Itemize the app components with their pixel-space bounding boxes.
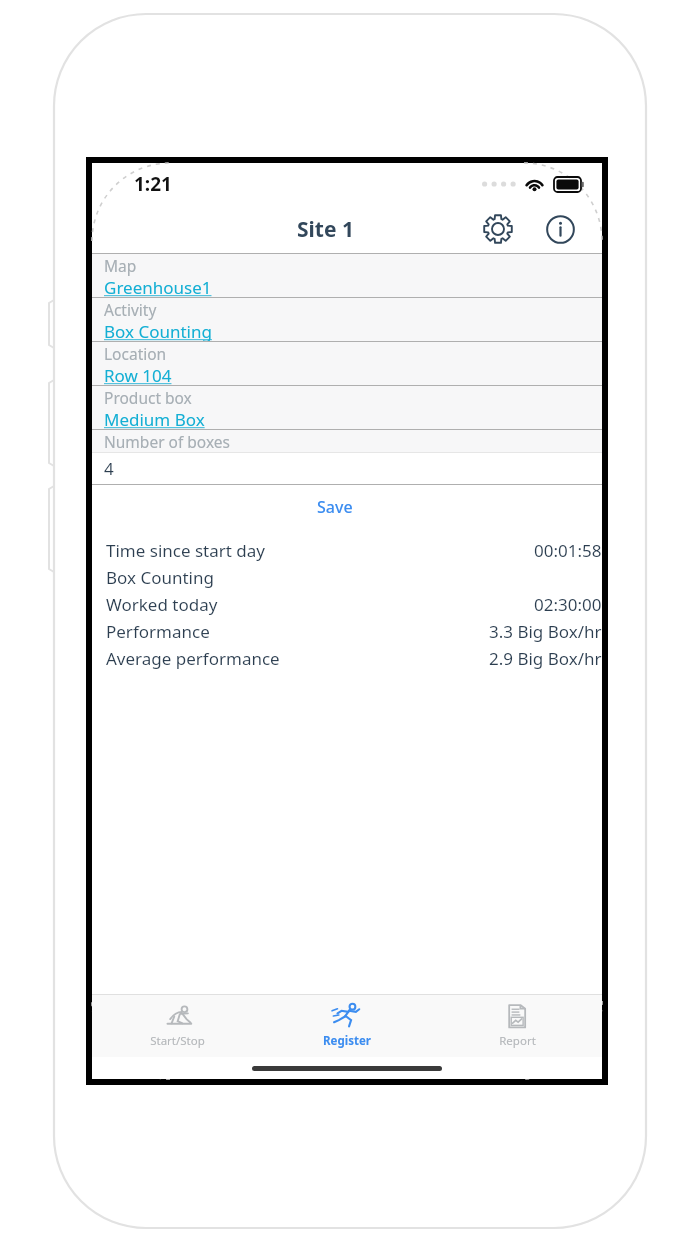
staticText: Worked today (106, 593, 218, 616)
staticText: 3.3 Big Box/hr (489, 620, 602, 643)
staticText: 1:21 (134, 171, 172, 197)
staticText: Location (104, 343, 167, 364)
staticText: 2.9 Big Box/hr (489, 647, 602, 670)
button[interactable]: 4 (92, 453, 602, 484)
staticText: Activity (104, 299, 157, 320)
staticText: Save (317, 496, 353, 518)
staticText: Site 1 (297, 215, 354, 244)
staticText: Map (104, 255, 137, 276)
button[interactable]: Save (303, 492, 367, 522)
button[interactable]: Register (262, 995, 432, 1057)
staticText: Register (323, 1033, 371, 1049)
button[interactable]: Info (540, 209, 580, 249)
button[interactable]: Performance (92, 618, 602, 645)
staticText: Number of boxes (104, 431, 230, 452)
button[interactable]: Start/Stop (92, 995, 262, 1057)
staticText: 02:30:00 (534, 593, 602, 616)
staticText: 00:01:58 (534, 539, 602, 562)
button[interactable]: Worked today (92, 591, 602, 618)
staticText: Box Counting (104, 320, 212, 341)
button[interactable]: Location (92, 342, 602, 385)
button[interactable]: Time since start day (92, 537, 602, 564)
staticText: Start/Stop (150, 1033, 205, 1049)
staticText: Performance (106, 620, 210, 643)
button[interactable]: Report (432, 995, 602, 1057)
staticText: 4 (104, 457, 114, 480)
staticText: Greenhouse1 (104, 276, 212, 297)
button[interactable]: Box Counting (92, 564, 602, 591)
button[interactable]: Product box (92, 386, 602, 429)
staticText: Box Counting (106, 566, 214, 589)
staticText: Time since start day (106, 539, 266, 562)
staticText: Product box (104, 387, 192, 408)
button[interactable]: Map (92, 254, 602, 297)
staticText: Report (499, 1033, 536, 1049)
staticText: Medium Box (104, 408, 205, 429)
staticText: Row 104 (104, 364, 172, 385)
button[interactable]: Average performance (92, 645, 602, 672)
button[interactable]: Settings (478, 209, 518, 249)
button[interactable]: Activity (92, 298, 602, 341)
staticText: Average performance (106, 647, 280, 670)
